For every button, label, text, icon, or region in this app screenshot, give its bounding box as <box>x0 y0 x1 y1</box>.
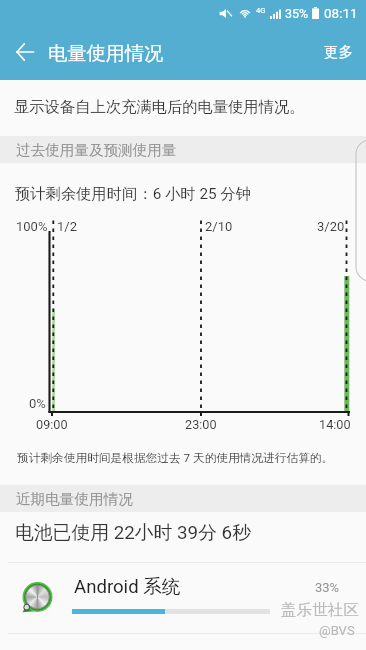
staticText: 0% <box>29 396 46 411</box>
staticText: 更多 <box>324 43 354 61</box>
button[interactable]: Back <box>5 32 45 72</box>
staticText: 电池已使用 22小时 39分 6秒 <box>15 521 251 545</box>
staticText: 08:11 <box>324 5 358 21</box>
staticText: 3/20 <box>317 219 345 234</box>
staticText: 1/2 <box>57 219 77 234</box>
staticText: 预计剩余使用时间是根据您过去 7 天的使用情况进行估算的。 <box>17 451 334 466</box>
staticText: Android 系统 <box>74 575 181 598</box>
staticText: 09:00 <box>36 417 68 432</box>
staticText: 过去使用量及预测使用量 <box>16 141 177 159</box>
staticText: 35% <box>285 6 309 21</box>
staticText: 显示设备自上次充满电后的电量使用情况。 <box>14 97 305 116</box>
staticText: 2/10 <box>205 219 233 234</box>
staticText: 近期电量使用情况 <box>16 490 133 508</box>
staticText: 4G <box>256 6 266 15</box>
staticText: 盖乐世社区 <box>281 600 359 620</box>
staticText: @BVS <box>319 623 355 638</box>
button[interactable]: 更多 <box>312 33 366 71</box>
staticText: 33% <box>315 580 340 595</box>
staticText: 预计剩余使用时间：6 小时 25 分钟 <box>15 184 252 203</box>
staticText: 23:00 <box>185 417 217 432</box>
staticText: 100% <box>16 219 48 234</box>
button[interactable]: Android 系统 <box>0 563 366 633</box>
staticText: 电量使用情况 <box>48 42 164 66</box>
staticText: 14:00 <box>319 417 351 432</box>
